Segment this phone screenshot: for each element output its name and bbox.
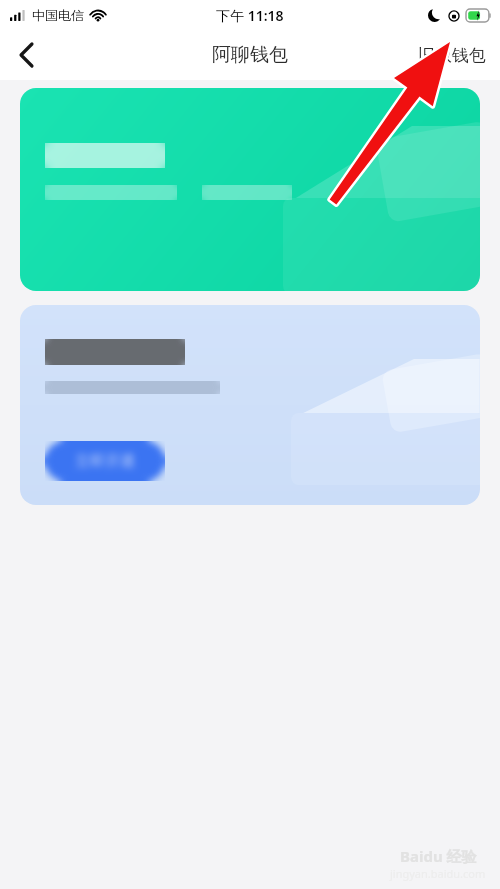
staticText: 中国电信 [32,7,84,23]
staticText: 阿聊钱包 [212,43,288,67]
button[interactable]: 旧版钱包 [404,35,500,76]
staticText: 旧版钱包 [418,45,486,66]
staticText: 立即开通 [75,452,135,471]
staticText: Baidu 经验 [400,846,477,866]
button[interactable] [20,88,480,291]
button[interactable]: 立即开通 [20,305,480,505]
staticText: 下午 11:18 [216,6,284,25]
button[interactable]: 返回 [0,30,52,80]
staticText: jingyan.baidu.com [390,866,486,881]
button[interactable]: 立即开通 [45,441,165,481]
